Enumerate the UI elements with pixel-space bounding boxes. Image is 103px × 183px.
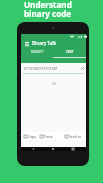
button[interactable]: Menu — [23, 40, 30, 47]
button[interactable]: Back — [31, 147, 35, 151]
button[interactable]: BINARY — [21, 48, 53, 58]
button[interactable]: TEXT — [53, 48, 86, 58]
button[interactable]: Home — [51, 147, 55, 151]
staticText: Send to — [69, 134, 82, 139]
button[interactable]: Copy — [24, 134, 36, 139]
staticText: Binary Talk — [32, 40, 56, 46]
staticText: Paste — [44, 134, 53, 139]
staticText: Understand binary code — [24, 0, 72, 19]
staticText: 01101000 01101001 — [24, 66, 80, 71]
staticText: Hi — [52, 81, 56, 86]
button[interactable]: Clear — [80, 66, 85, 71]
button[interactable]: Paste — [40, 134, 53, 139]
button[interactable]: Send to — [65, 134, 82, 139]
staticText: TEXT — [66, 49, 74, 54]
button[interactable]: Recents — [71, 147, 75, 151]
staticText: Copy — [28, 134, 36, 139]
staticText: BINARY — [31, 49, 44, 54]
